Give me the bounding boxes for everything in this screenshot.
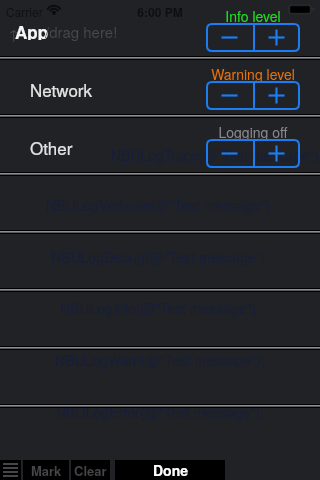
button[interactable]: Clear xyxy=(71,460,110,480)
staticText: /drag here! xyxy=(45,21,118,41)
button[interactable]: Mark xyxy=(23,460,69,480)
staticText: 6:00 PM xyxy=(0,3,320,20)
staticText: Warning level xyxy=(206,64,300,84)
button[interactable]: Decrease level xyxy=(206,81,253,110)
button[interactable]: Other xyxy=(30,135,73,159)
staticText: Carrier xyxy=(6,3,43,20)
staticText: Info level xyxy=(206,6,300,26)
staticText: NBULogInfo(@"Test message"); xyxy=(60,298,261,318)
button[interactable]: Increase level xyxy=(253,81,300,110)
staticText: Clear xyxy=(74,461,107,480)
button[interactable]: NBULogInfo(@"Test message"); xyxy=(0,297,320,319)
button[interactable]: NBULogTrace(@"Test message"); xyxy=(111,144,320,166)
button[interactable]: ↑ xyxy=(0,20,130,40)
button[interactable]: Done xyxy=(115,460,225,480)
staticText: ↑ xyxy=(8,23,20,43)
button[interactable]: Increase level xyxy=(253,23,300,52)
staticText: NBULogWarn(@"Test message"); xyxy=(55,350,265,370)
button[interactable]: NBULogDebug(@"Test message"); xyxy=(0,246,320,268)
button[interactable]: Decrease level xyxy=(206,23,253,52)
button[interactable]: Menu xyxy=(0,460,21,480)
button[interactable]: NBULogError(@"Test message"); xyxy=(0,401,320,423)
staticText: Done xyxy=(153,460,188,480)
button[interactable]: NBULogVerbose(@"Test message"); xyxy=(0,194,320,216)
staticText: NBULogError(@"Test message"); xyxy=(56,402,264,422)
button[interactable]: NBULogWarn(@"Test message"); xyxy=(0,349,320,371)
button[interactable]: Network xyxy=(30,77,93,101)
staticText: App xyxy=(15,20,49,40)
staticText: NBULogVerbose(@"Test message"); xyxy=(46,195,275,215)
staticText: Mark xyxy=(31,461,62,480)
staticText: Logging off xyxy=(206,122,300,142)
staticText: NBULogDebug(@"Test message"); xyxy=(51,247,270,267)
button[interactable]: Increase level xyxy=(253,139,300,168)
staticText: NBULogTrace(@"Test message"); xyxy=(111,145,320,165)
button[interactable]: Decrease level xyxy=(206,139,253,168)
